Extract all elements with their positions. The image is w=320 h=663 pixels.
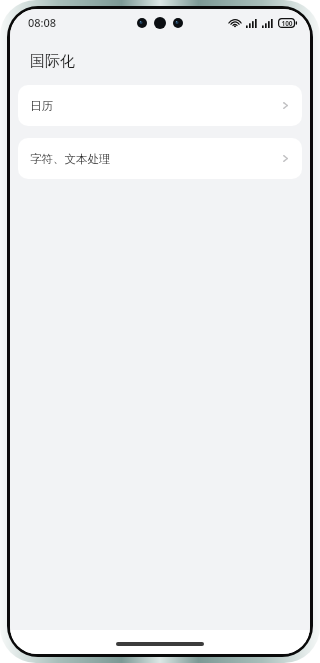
- staticText: 国际化: [30, 52, 75, 71]
- staticText: 字符、文本处理: [30, 152, 280, 166]
- staticText: 08:08: [28, 15, 57, 30]
- button[interactable]: 字符、文本处理: [18, 138, 302, 179]
- staticText: 100: [281, 19, 293, 28]
- button[interactable]: 日历: [18, 85, 302, 126]
- staticText: 日历: [30, 99, 280, 113]
